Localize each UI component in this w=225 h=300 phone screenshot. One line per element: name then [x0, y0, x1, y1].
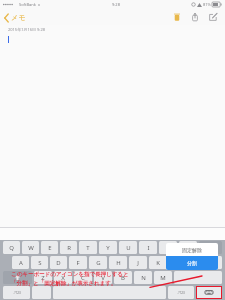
staticText: 分割 — [187, 260, 197, 266]
staticText: B — [121, 274, 125, 282]
staticText: 固定解除 — [182, 247, 202, 253]
button[interactable]: S — [31, 256, 48, 269]
staticText: N — [141, 274, 146, 282]
staticText: V — [101, 274, 105, 282]
staticText: D — [56, 259, 61, 267]
staticText: Z — [41, 274, 45, 282]
staticText: P — [186, 244, 190, 252]
staticText: .?123 — [13, 291, 21, 295]
button[interactable]: W — [22, 241, 39, 254]
button[interactable]: B — [114, 271, 132, 284]
button[interactable] — [32, 286, 51, 299]
button[interactable]: New note — [204, 9, 222, 25]
button[interactable]: メモ — [0, 11, 30, 24]
staticText: X — [61, 274, 65, 282]
button[interactable]: P — [179, 241, 197, 254]
button[interactable]: Return — [189, 256, 222, 269]
staticText: G — [96, 259, 101, 267]
button[interactable]: .?123 — [3, 286, 30, 299]
staticText: M — [160, 274, 166, 282]
staticText: C — [81, 274, 85, 282]
staticText: J — [137, 259, 139, 267]
staticText: 9:28 — [112, 2, 120, 7]
button[interactable]: D — [50, 256, 67, 269]
button[interactable]: Shift — [3, 271, 32, 284]
button[interactable]: 分割 — [166, 256, 218, 270]
staticText: S — [38, 259, 42, 267]
button[interactable]: Shift — [174, 271, 222, 284]
button[interactable]: N — [134, 271, 152, 284]
button[interactable]: T — [79, 241, 97, 254]
button[interactable]: E — [41, 241, 58, 254]
button[interactable]: Delete — [168, 9, 186, 25]
button[interactable]: 固定解除 — [166, 243, 218, 256]
staticText: T — [86, 244, 90, 252]
button[interactable]: O — [159, 241, 177, 254]
staticText: Q — [9, 244, 14, 252]
button[interactable]: Share — [186, 9, 204, 25]
button[interactable]: K — [149, 256, 167, 269]
button[interactable]: A — [12, 256, 29, 269]
staticText: A — [19, 259, 23, 267]
staticText: 81% — [203, 2, 211, 7]
staticText: K — [156, 259, 160, 267]
staticText: I — [147, 244, 150, 252]
button[interactable]: V — [94, 271, 112, 284]
button[interactable]: F — [69, 256, 87, 269]
button[interactable]: U — [119, 241, 137, 254]
button[interactable]: I — [139, 241, 157, 254]
button[interactable]: M — [154, 271, 172, 284]
staticText: W — [28, 244, 34, 252]
staticText: Y — [106, 244, 110, 252]
button[interactable]: Y — [99, 241, 117, 254]
staticText: SoftBank — [19, 2, 36, 7]
button[interactable]: G — [89, 256, 107, 269]
button[interactable]: Backspace — [199, 241, 222, 254]
button[interactable] — [53, 286, 166, 299]
button[interactable]: J — [129, 256, 147, 269]
button[interactable]: H — [109, 256, 127, 269]
button[interactable]: R — [60, 241, 77, 254]
staticText: U — [126, 244, 131, 252]
button[interactable]: Q — [3, 241, 20, 254]
staticText: このキーボードのアイコンを指で長押しすると — [11, 271, 129, 278]
button[interactable]: X — [54, 271, 72, 284]
staticText: .?123 — [177, 291, 185, 295]
button[interactable]: Z — [34, 271, 52, 284]
staticText: 「分割」と「固定解除」が表示されます。 — [11, 280, 117, 287]
staticText: R — [67, 244, 71, 252]
staticText: E — [48, 244, 52, 252]
button[interactable]: C — [74, 271, 92, 284]
staticText: H — [116, 259, 121, 267]
staticText: 2015年1月16日 9:28 — [8, 27, 45, 32]
staticText: メモ — [11, 13, 26, 22]
button[interactable]: Hide keyboard — [196, 286, 222, 299]
button[interactable]: .?123 — [168, 286, 194, 299]
staticText: F — [76, 259, 80, 267]
